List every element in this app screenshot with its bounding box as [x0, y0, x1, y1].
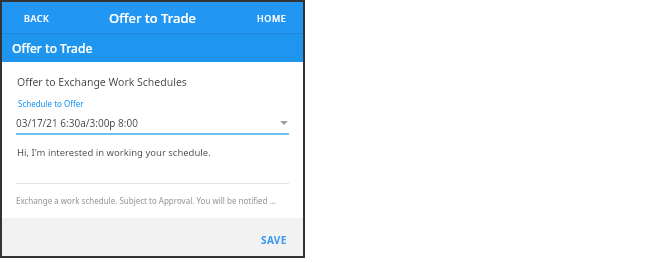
staticText: Offer to Exchange Work Schedules — [17, 75, 187, 89]
button[interactable]: HOME — [249, 6, 295, 30]
button[interactable]: SAVE — [253, 228, 295, 252]
staticText: BACK — [24, 12, 50, 24]
staticText: HOME — [257, 12, 287, 24]
button[interactable]: 03/17/21 6:30a/3:00p 8:00 — [16, 116, 289, 135]
other: Open schedule list — [280, 120, 288, 126]
staticText: SAVE — [261, 233, 287, 247]
button[interactable]: BACK — [14, 6, 60, 30]
staticText: Offer to Trade — [12, 40, 93, 56]
staticText: 03/17/21 6:30a/3:00p 8:00 — [16, 116, 280, 130]
button[interactable]: Hi, I'm interested in working your sched… — [2, 146, 303, 159]
staticText: Schedule to Offer — [18, 98, 84, 109]
staticText: Offer to Trade — [109, 9, 196, 27]
staticText: Exchange a work schedule. Subject to App… — [16, 195, 277, 206]
